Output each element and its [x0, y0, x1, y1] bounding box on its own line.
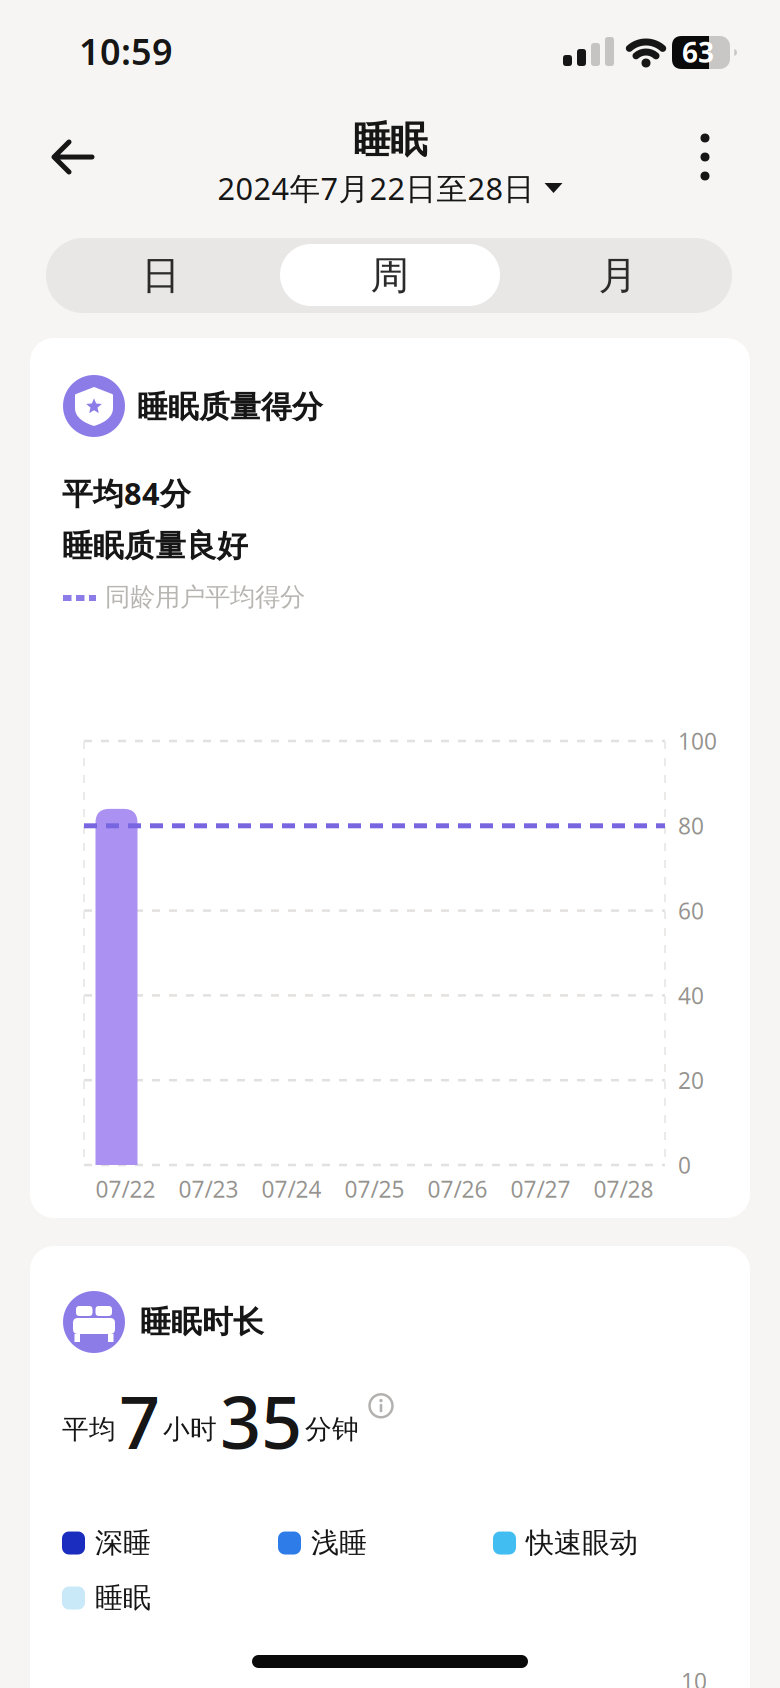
- staticText: 07/22: [95, 1174, 155, 1204]
- staticText: 睡眠质量良好: [62, 527, 248, 565]
- staticText: 睡眠时长: [140, 1303, 264, 1341]
- staticText: 睡眠质量得分: [137, 388, 323, 426]
- staticText: 同龄用户平均得分: [105, 581, 305, 612]
- staticText: 月: [598, 252, 637, 299]
- staticText: 07/26: [427, 1174, 487, 1204]
- staticText: 分钟: [305, 1413, 359, 1446]
- staticText: 周: [370, 252, 409, 299]
- button[interactable]: More options: [700, 133, 710, 181]
- button[interactable]: Back: [50, 140, 96, 174]
- staticText: 7: [119, 1373, 160, 1469]
- staticText: 07/27: [510, 1174, 570, 1204]
- staticText: 10: [681, 1666, 707, 1688]
- staticText: 20: [678, 1065, 704, 1095]
- staticText: 浅睡: [311, 1526, 367, 1560]
- staticText: 40: [678, 980, 704, 1010]
- staticText: 63: [682, 33, 714, 71]
- staticText: 60: [678, 895, 704, 926]
- staticText: 日: [141, 252, 180, 299]
- button[interactable]: 日: [47, 238, 275, 313]
- staticText: 35: [220, 1373, 302, 1469]
- button[interactable]: 周: [276, 238, 504, 313]
- staticText: 2024年7月22日至28日: [217, 168, 534, 208]
- staticText: 小时: [163, 1413, 217, 1446]
- staticText: 100: [678, 726, 717, 756]
- button[interactable]: 2024年7月22日至28日: [217, 168, 562, 208]
- staticText: 睡眠: [353, 117, 427, 163]
- staticText: 07/24: [261, 1174, 321, 1204]
- staticText: 睡眠: [95, 1581, 151, 1615]
- staticText: 07/28: [593, 1174, 653, 1204]
- button[interactable]: 月: [504, 238, 732, 313]
- button[interactable]: About sleep duration: [368, 1393, 394, 1419]
- staticText: 80: [678, 811, 704, 841]
- staticText: 平均: [62, 1413, 116, 1446]
- staticText: 07/23: [178, 1174, 238, 1204]
- staticText: 10:59: [79, 27, 173, 75]
- staticText: 快速眼动: [526, 1526, 638, 1560]
- staticText: 深睡: [95, 1526, 151, 1560]
- staticText: 0: [678, 1150, 691, 1180]
- staticText: 07/25: [344, 1174, 404, 1204]
- staticText: 平均84分: [62, 473, 191, 513]
